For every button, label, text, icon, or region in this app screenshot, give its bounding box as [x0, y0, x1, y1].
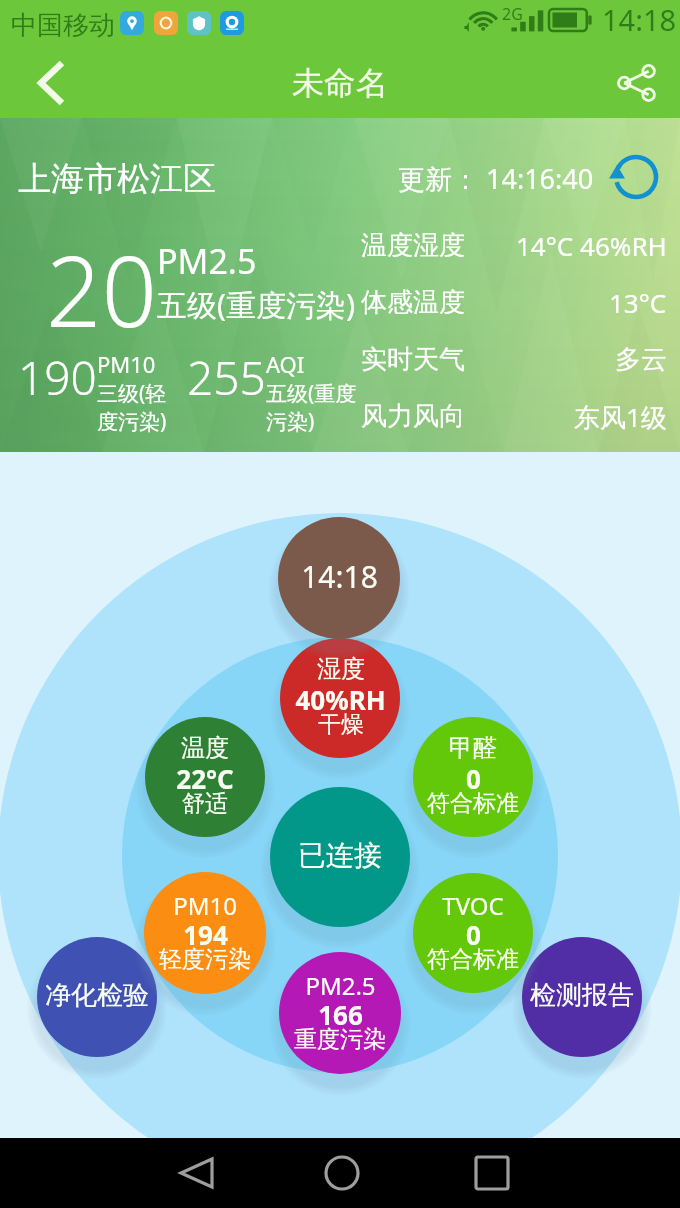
staticText: 净化检验 [45, 979, 149, 1012]
staticText: 40%RH [295, 682, 386, 710]
staticText: 2G [502, 3, 523, 25]
staticText: 检测报告 [530, 979, 634, 1012]
button[interactable]: Share [605, 52, 667, 114]
staticText: 湿度 [317, 654, 365, 682]
button[interactable]: 湿度 [280, 638, 400, 758]
staticText: 0 [466, 761, 481, 789]
staticText: 风力风向 [361, 400, 465, 433]
staticText: 22°C [176, 761, 234, 789]
staticText: PM10 [97, 349, 156, 379]
button[interactable]: Recents [461, 1142, 523, 1204]
staticText: 干燥 [318, 710, 364, 738]
staticText: PM2.5 [305, 969, 376, 997]
button[interactable]: Back [16, 48, 86, 118]
staticText: 三级(轻度污染) [97, 379, 167, 435]
staticText: 0 [466, 917, 481, 945]
staticText: 温度湿度 [361, 229, 465, 262]
staticText: 14:18 [301, 556, 378, 597]
staticText: 五级(重度污染) [157, 284, 355, 325]
staticText: 温度 [181, 733, 229, 761]
staticText: 未命名 [292, 63, 388, 103]
staticText: 20 [46, 223, 157, 355]
staticText: 更新： 14:16:40 [398, 160, 594, 197]
button[interactable]: PM2.5 [279, 952, 401, 1074]
button[interactable]: 14:18 [278, 517, 400, 639]
button[interactable]: 已连接 [270, 787, 410, 927]
staticText: 194 [183, 917, 228, 945]
staticText: 已连接 [298, 838, 382, 873]
staticText: 符合标准 [427, 945, 519, 973]
staticText: 166 [318, 997, 363, 1025]
staticText: 255 [187, 346, 266, 409]
staticText: 中国移动 [11, 9, 115, 42]
staticText: 多云 [615, 343, 667, 376]
staticText: TVOC [442, 889, 504, 917]
staticText: 13°C [609, 285, 667, 320]
button[interactable]: TVOC [413, 873, 533, 993]
button[interactable]: 甲醛 [413, 717, 533, 837]
button[interactable]: 净化检验 [37, 937, 157, 1057]
staticText: 轻度污染 [159, 945, 251, 973]
button[interactable]: 检测报告 [522, 937, 642, 1057]
staticText: AQI [266, 349, 305, 379]
staticText: 符合标准 [427, 789, 519, 817]
staticText: PM2.5 [157, 238, 257, 284]
staticText: 甲醛 [449, 733, 497, 761]
staticText: 14°C 46%RH [516, 228, 667, 263]
button[interactable]: Refresh [611, 152, 661, 202]
staticText: PM10 [173, 889, 237, 917]
staticText: 实时天气 [361, 343, 465, 376]
staticText: 东风1级 [574, 399, 667, 435]
button[interactable]: 温度 [145, 717, 265, 837]
staticText: 重度污染 [294, 1025, 386, 1053]
button[interactable]: Back [165, 1142, 227, 1204]
staticText: 五级(重度污染) [266, 379, 374, 435]
staticText: 舒适 [182, 789, 228, 817]
staticText: 14:18 [602, 0, 677, 39]
button[interactable]: PM10 [144, 872, 266, 994]
staticText: 体感温度 [361, 286, 465, 319]
button[interactable]: Home [311, 1142, 373, 1204]
staticText: 190 [18, 346, 97, 409]
staticText: 上海市松江区 [18, 158, 216, 200]
